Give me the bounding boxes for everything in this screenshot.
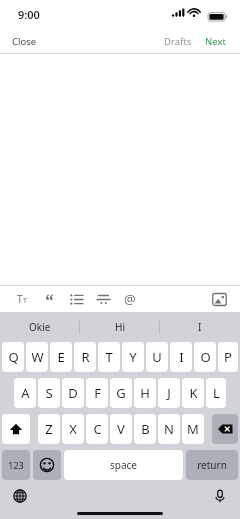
staticText: I [198,320,202,334]
button[interactable]: Q [2,342,24,372]
button[interactable]: P [218,342,238,372]
button[interactable]: E [50,342,72,372]
staticText: L [213,384,220,402]
button[interactable]: Z [38,414,60,444]
button[interactable]: Insert image [208,288,230,310]
staticText: W [31,348,44,366]
button[interactable]: Emoji [33,450,61,480]
button[interactable]: Bulleted list [65,288,87,310]
button[interactable]: C [86,414,108,444]
staticText: O [200,348,211,366]
staticText: Hi [115,320,125,334]
button[interactable]: K [182,378,204,408]
button[interactable]: M [182,414,204,444]
button[interactable]: D [62,378,84,408]
staticText: Drafts [164,35,192,48]
staticText: J [167,384,171,402]
staticText: H [140,384,150,402]
button[interactable]: T [98,342,120,372]
button[interactable]: 123 [2,450,30,480]
staticText: R [81,348,90,366]
staticText: M [187,420,199,438]
button[interactable]: Drafts [160,31,196,52]
button[interactable]: Hi [80,312,160,342]
button[interactable]: L [206,378,226,408]
button[interactable]: B [134,414,156,444]
button[interactable]: W [26,342,48,372]
button[interactable]: V [110,414,132,444]
staticText: K [189,384,198,402]
staticText: F [94,384,101,402]
staticText: S [45,384,53,402]
staticText: Z [45,420,53,438]
button[interactable]: H [134,378,156,408]
staticText: D [68,384,78,402]
staticText: A [21,384,30,402]
button[interactable]: S [38,378,60,408]
button[interactable]: U [146,342,168,372]
button[interactable]: Quote [38,288,60,310]
staticText: return [197,458,227,472]
button[interactable]: Dictation [210,486,230,506]
staticText: I [179,348,184,366]
staticText: X [69,420,77,438]
staticText: Next [205,35,226,48]
button[interactable]: O [194,342,216,372]
staticText: G [116,384,126,402]
button[interactable]: Next [202,31,229,52]
staticText: C [93,420,102,438]
staticText: U [152,348,162,366]
staticText: space [110,458,137,472]
button[interactable]: Close [0,31,45,52]
button[interactable]: Change keyboard [10,486,30,506]
button[interactable]: Shift [2,414,30,444]
staticText: 123 [8,459,24,471]
button[interactable]: N [158,414,180,444]
button[interactable]: return [186,450,238,480]
button[interactable]: X [62,414,84,444]
button[interactable]: G [110,378,132,408]
staticText: Y [129,348,137,366]
staticText: P [224,348,232,366]
staticText: “ [45,288,54,310]
button[interactable]: space [64,450,183,480]
staticText: B [141,420,150,438]
staticText: T [105,348,113,366]
staticText: N [164,420,174,438]
button[interactable]: Mention [119,288,141,310]
staticText: T [17,292,23,306]
button[interactable]: I [170,342,192,372]
staticText: 9:00 [18,7,40,22]
button[interactable]: Text format [10,287,34,311]
button[interactable]: R [74,342,96,372]
button[interactable]: Y [122,342,144,372]
staticText: V [117,420,125,438]
button[interactable]: Backspace [212,414,238,444]
button[interactable]: J [158,378,180,408]
button[interactable]: F [86,378,108,408]
staticText: Okie [29,320,51,334]
staticText: Q [8,348,19,366]
staticText: E [57,348,65,366]
staticText: @ [124,290,136,308]
button[interactable]: Okie [0,312,80,342]
staticText: T [23,296,27,306]
button[interactable]: A [14,378,36,408]
staticText: Close [12,35,37,48]
button[interactable]: I [160,312,240,342]
button[interactable]: Insert divider [92,288,114,310]
